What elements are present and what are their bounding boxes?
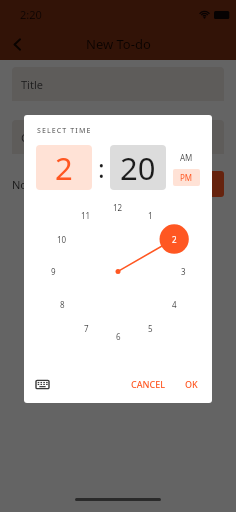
staticText: 6	[116, 331, 121, 342]
staticText: 3	[181, 266, 186, 277]
staticText: 9	[51, 266, 56, 277]
staticText: 8	[60, 299, 65, 310]
staticText: PM	[180, 172, 193, 183]
staticText: 2	[172, 234, 177, 245]
staticText: New To-do	[86, 35, 151, 53]
staticText: 20	[120, 147, 156, 189]
staticText: 2	[55, 147, 73, 189]
button[interactable]: Content	[12, 120, 224, 154]
staticText: 12	[113, 202, 123, 213]
button[interactable]: PM	[173, 169, 200, 186]
staticText: Notification	[12, 177, 73, 192]
staticText: 10	[57, 234, 67, 245]
staticText: 11	[81, 210, 91, 221]
button[interactable]: Clock dial, 2 o'clock selected	[24, 190, 212, 369]
staticText: SELECT TIME	[37, 126, 92, 136]
staticText: 7	[84, 323, 89, 334]
staticText: CANCEL	[131, 378, 166, 390]
button[interactable]: 20	[110, 145, 166, 190]
staticText: SET	[194, 177, 211, 191]
button[interactable]: Back	[3, 30, 31, 58]
button[interactable]: Switch to keyboard input	[32, 374, 52, 394]
staticText: 1	[148, 210, 153, 221]
staticText: Content	[21, 130, 63, 145]
staticText: Title	[21, 77, 43, 92]
staticText: :	[98, 151, 105, 185]
staticText: 4	[172, 299, 177, 310]
button[interactable]: OK	[179, 374, 204, 394]
staticText: 2:20	[20, 7, 42, 22]
staticText: AM	[180, 152, 193, 163]
button[interactable]: CANCEL	[125, 374, 172, 394]
button[interactable]: 2	[36, 145, 92, 190]
staticText: OK	[185, 378, 198, 390]
staticText: 5	[148, 323, 153, 334]
button[interactable]: Title	[12, 67, 224, 101]
button[interactable]: AM	[173, 149, 200, 166]
button[interactable]: SET	[180, 171, 224, 197]
